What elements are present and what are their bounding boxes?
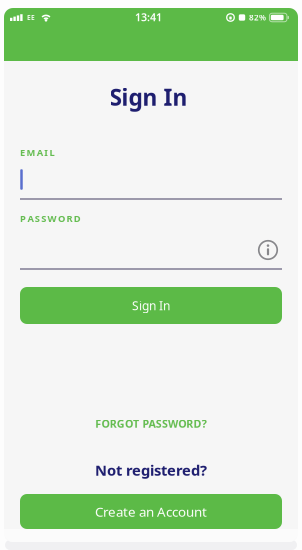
button[interactable]: Password information — [257, 239, 279, 261]
button[interactable]: Email — [20, 146, 282, 202]
staticText: Sign In — [132, 297, 170, 313]
staticText: FORGOT PASSWORD? — [95, 416, 207, 431]
button[interactable]: Create an Account — [20, 494, 282, 529]
button[interactable]: Sign In — [20, 287, 282, 324]
staticText: 13:41 — [135, 10, 162, 24]
staticText: 82% — [249, 12, 266, 23]
button[interactable]: FORGOT PASSWORD? — [95, 416, 207, 431]
staticText: Sign In — [109, 82, 187, 112]
button[interactable]: Password — [20, 212, 282, 271]
staticText: EE — [27, 13, 35, 22]
staticText: P A S S W O R D — [20, 212, 81, 225]
staticText: Not registered? — [95, 460, 207, 480]
staticText: E M A I L — [20, 146, 55, 159]
staticText: Create an Account — [95, 503, 207, 520]
